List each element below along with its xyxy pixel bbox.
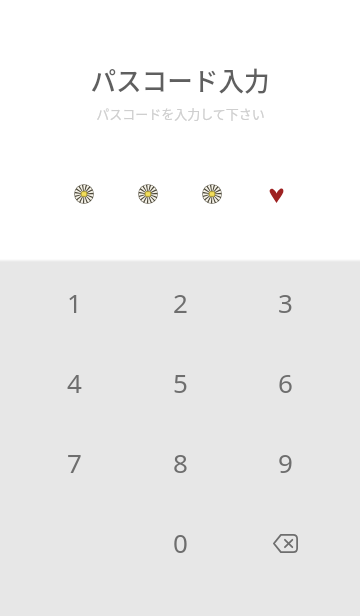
button[interactable]: 2 xyxy=(132,265,228,339)
button[interactable]: 4 xyxy=(26,345,122,419)
staticText: 1 xyxy=(67,285,82,320)
staticText: パスコード入力 xyxy=(90,61,270,98)
button[interactable]: 3 xyxy=(237,265,333,339)
button[interactable]: 6 xyxy=(237,345,333,419)
staticText: 5 xyxy=(173,365,188,400)
staticText: 9 xyxy=(278,445,293,480)
button[interactable]: 9 xyxy=(237,425,333,499)
button[interactable]: 1 xyxy=(26,265,122,339)
staticText: 8 xyxy=(173,445,188,480)
button[interactable]: Delete xyxy=(237,505,333,579)
staticText: 3 xyxy=(278,285,293,320)
button[interactable]: 0 xyxy=(132,505,228,579)
staticText: パスコードを入力して下さい xyxy=(96,104,265,123)
staticText: 6 xyxy=(278,365,293,400)
button[interactable]: 5 xyxy=(132,345,228,419)
staticText: 7 xyxy=(67,445,82,480)
staticText: 0 xyxy=(173,525,188,560)
staticText: 4 xyxy=(67,365,82,400)
button[interactable]: 8 xyxy=(132,425,228,499)
button[interactable]: 7 xyxy=(26,425,122,499)
staticText: 2 xyxy=(173,285,188,320)
